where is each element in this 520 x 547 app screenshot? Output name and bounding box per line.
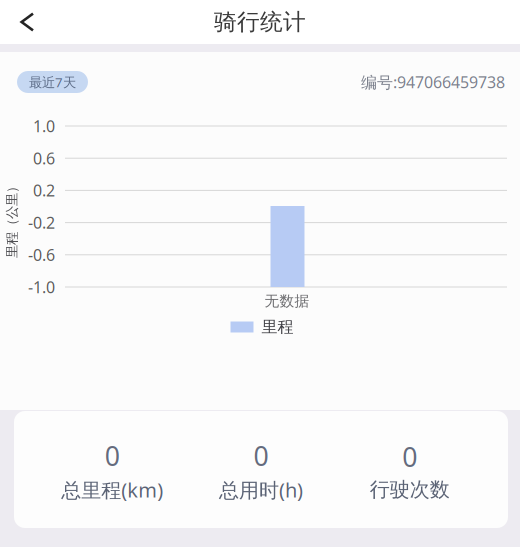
staticText: 0 — [253, 438, 268, 473]
staticText: -0.2 — [28, 212, 55, 233]
staticText: -1.0 — [28, 276, 55, 298]
staticText: 0.2 — [33, 180, 55, 201]
staticText: 行驶次数 — [370, 477, 450, 502]
staticText: 总里程(km) — [61, 476, 163, 503]
staticText: 最近7天 — [29, 73, 76, 91]
button[interactable]: 最近7天 — [17, 71, 88, 93]
staticText: 0 — [105, 438, 120, 473]
staticText: 1.0 — [33, 115, 55, 137]
staticText: 骑行统计 — [214, 8, 306, 36]
staticText: 无数据 — [264, 292, 309, 310]
staticText: 里程（公里） — [0, 211, 51, 227]
staticText: -0.6 — [28, 244, 55, 265]
staticText: 0.6 — [33, 148, 55, 169]
button[interactable]: Back — [0, 2, 49, 42]
staticText: 0 — [402, 439, 417, 474]
staticText: 总用时(h) — [219, 476, 303, 503]
staticText: 编号:947066459738 — [361, 71, 505, 93]
staticText: 里程 — [261, 317, 293, 337]
